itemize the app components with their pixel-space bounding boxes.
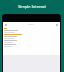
button[interactable] bbox=[3, 35, 60, 37]
staticText: Simple Interest bbox=[18, 4, 46, 9]
button[interactable] bbox=[3, 37, 60, 39]
button[interactable] bbox=[3, 39, 60, 41]
button[interactable] bbox=[3, 31, 60, 33]
button[interactable] bbox=[3, 33, 60, 35]
button[interactable] bbox=[3, 43, 60, 45]
button[interactable] bbox=[3, 27, 60, 29]
button[interactable] bbox=[3, 41, 60, 43]
button[interactable] bbox=[3, 29, 60, 31]
button[interactable] bbox=[3, 45, 60, 47]
